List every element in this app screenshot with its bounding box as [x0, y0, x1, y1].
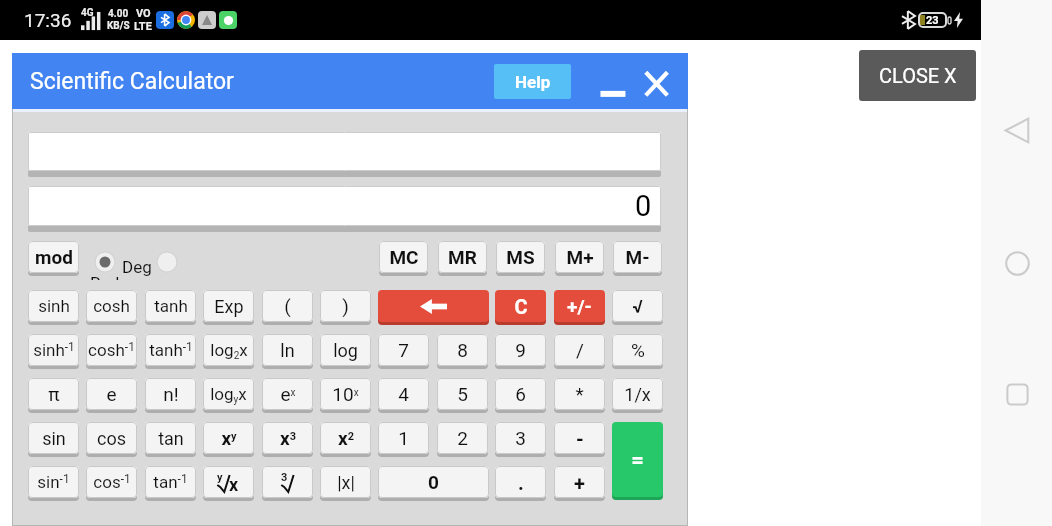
button[interactable]: MS [496, 241, 545, 273]
button[interactable]: % [612, 334, 663, 366]
staticText: 1 [398, 427, 409, 449]
staticText: tan [158, 428, 184, 449]
staticText: sinh-1 [33, 340, 75, 360]
button[interactable]: M- [613, 241, 662, 273]
button[interactable]: CLOSE X [859, 50, 976, 101]
button[interactable]: ex [262, 378, 313, 410]
button[interactable]: cos [86, 422, 137, 454]
button[interactable]: 5 [437, 378, 488, 410]
button[interactable]: |x| [320, 466, 371, 498]
button[interactable]: ( [262, 290, 313, 322]
staticText: M+ [566, 246, 594, 268]
button[interactable]: 6 [495, 378, 546, 410]
staticText: log [333, 340, 358, 361]
button[interactable]: logyx [203, 378, 254, 410]
button[interactable]: cosh [86, 290, 137, 322]
button[interactable]: +/- [554, 290, 605, 322]
button[interactable]: Minimize [598, 62, 633, 100]
staticText: +/- [567, 295, 592, 317]
button[interactable]: mod [28, 241, 79, 273]
button[interactable]: sin-1 [28, 466, 79, 498]
button[interactable]: tan-1 [145, 466, 196, 498]
button[interactable]: ) [320, 290, 371, 322]
staticText: sin-1 [37, 472, 70, 492]
button[interactable]: log2x [203, 334, 254, 366]
staticText: 3 [281, 471, 288, 484]
staticText: |x| [337, 472, 355, 493]
staticText: Deg [122, 257, 152, 277]
staticText: Exp [214, 296, 244, 317]
button[interactable]: - [554, 422, 605, 454]
button[interactable]: . [495, 466, 546, 498]
button[interactable]: tanh [145, 290, 196, 322]
staticText: MS [506, 246, 535, 268]
button[interactable]: tanh-1 [145, 334, 196, 366]
staticText: MC [389, 246, 419, 268]
button[interactable]: x3 [262, 422, 313, 454]
button[interactable]: cosh-1 [86, 334, 137, 366]
staticText: ex [280, 383, 296, 405]
staticText: tanh-1 [149, 340, 193, 360]
button[interactable]: tan [145, 422, 196, 454]
button[interactable]: log [320, 334, 371, 366]
button[interactable]: x2 [320, 422, 371, 454]
button[interactable]: 8 [437, 334, 488, 366]
button[interactable]: 1 [378, 422, 429, 454]
staticText: 10x [332, 383, 359, 405]
staticText: 17:36 [24, 9, 72, 31]
staticText: C [514, 295, 528, 318]
button[interactable]: Backspace [378, 290, 489, 322]
button[interactable]: 10x [320, 378, 371, 410]
button[interactable]: e [86, 378, 137, 410]
staticText: cos-1 [93, 472, 131, 492]
staticText: = [631, 447, 644, 473]
button[interactable]: cube root [262, 466, 313, 498]
staticText: 1/x [624, 384, 651, 405]
button[interactable]: / [554, 334, 605, 366]
button[interactable]: MR [438, 241, 487, 273]
button[interactable]: sin [28, 422, 79, 454]
button[interactable]: = [612, 422, 663, 497]
button[interactable]: xy [203, 422, 254, 454]
button[interactable]: 0 [378, 466, 489, 498]
staticText: 3 [515, 427, 526, 449]
button[interactable]: Recents [1006, 383, 1029, 406]
staticText: 4 [398, 383, 409, 405]
staticText: y [217, 471, 223, 484]
button[interactable]: + [554, 466, 605, 498]
button[interactable]: √ [612, 290, 663, 322]
staticText: VO [136, 7, 151, 20]
button[interactable]: Home [1005, 251, 1030, 276]
button[interactable]: Radians [156, 251, 178, 273]
button[interactable]: C [495, 290, 546, 322]
button[interactable]: π [28, 378, 79, 410]
button[interactable]: sinh [28, 290, 79, 322]
button[interactable]: M+ [555, 241, 604, 273]
button[interactable]: Exp [203, 290, 254, 322]
button[interactable]: 3 [495, 422, 546, 454]
button[interactable]: Back [1004, 117, 1031, 144]
button[interactable]: 1/x [612, 378, 663, 410]
button[interactable]: sinh-1 [28, 334, 79, 366]
button[interactable]: ln [262, 334, 313, 366]
staticText: - [576, 427, 584, 450]
button[interactable]: Close [644, 62, 674, 100]
button[interactable]: 7 [378, 334, 429, 366]
staticText: n! [163, 383, 179, 405]
button[interactable]: MC [379, 241, 428, 273]
button[interactable]: cos-1 [86, 466, 137, 498]
staticText: % [631, 339, 645, 361]
staticText: e [106, 383, 117, 405]
button[interactable]: nth root of x [203, 466, 254, 498]
staticText: + [574, 471, 585, 494]
button[interactable]: 9 [495, 334, 546, 366]
staticText: x3 [280, 427, 296, 449]
staticText: 23 [926, 14, 939, 27]
button[interactable]: 2 [437, 422, 488, 454]
button[interactable]: Help [494, 64, 571, 99]
button[interactable]: Degrees [94, 251, 116, 273]
button[interactable]: 4 [378, 378, 429, 410]
button[interactable]: * [554, 378, 605, 410]
staticText: 8 [457, 339, 468, 361]
button[interactable]: n! [145, 378, 196, 410]
